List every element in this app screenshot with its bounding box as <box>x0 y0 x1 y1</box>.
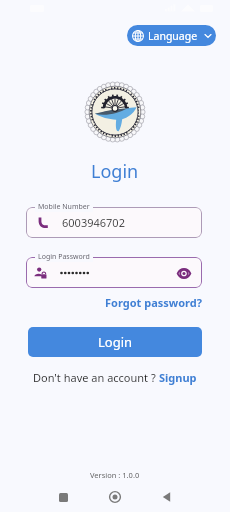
button[interactable]: Show password <box>172 261 196 285</box>
staticText: 6003946702 <box>62 215 125 230</box>
button[interactable]: Forgot password? <box>103 293 204 312</box>
button[interactable]: Signup <box>159 370 197 385</box>
staticText: Forgot password? <box>105 295 202 310</box>
staticText: Language <box>148 29 198 43</box>
staticText: Don't have an account ? <box>33 370 159 385</box>
staticText: Login Password <box>38 252 90 262</box>
button[interactable]: Show password <box>26 257 202 288</box>
staticText: Login <box>91 159 139 184</box>
button[interactable]: 6003946702 <box>26 207 202 238</box>
button[interactable]: Login <box>28 327 202 357</box>
button[interactable]: Language <box>127 25 216 46</box>
staticText: Version : 1.0.0 <box>90 470 140 480</box>
button[interactable]: Home <box>103 485 127 509</box>
button[interactable]: Recents <box>51 485 75 509</box>
staticText: Mobile Number <box>38 202 90 212</box>
button[interactable]: Back <box>155 485 179 509</box>
staticText: Login <box>98 333 133 351</box>
staticText: Signup <box>159 370 197 385</box>
